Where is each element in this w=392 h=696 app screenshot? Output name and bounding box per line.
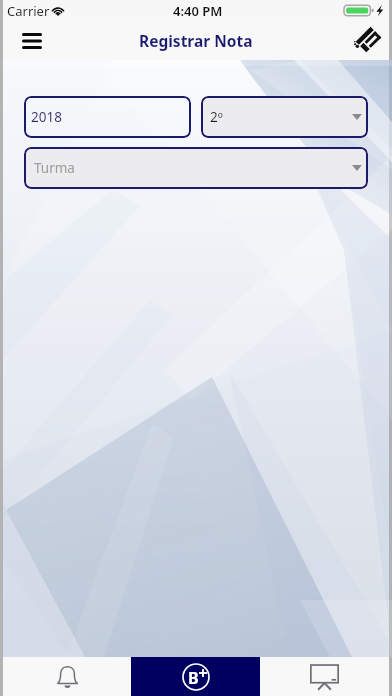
button[interactable]: Menu [3, 21, 51, 60]
staticText: Registrar Nota [139, 30, 253, 51]
button[interactable]: 2º [201, 96, 368, 138]
staticText: 2018 [31, 108, 62, 126]
button[interactable]: Notas [131, 657, 260, 696]
staticText: 2º [210, 108, 223, 126]
staticText: Carrier [7, 2, 50, 20]
button[interactable]: Corrigir [345, 21, 389, 60]
staticText: B [188, 667, 199, 689]
button[interactable]: Notificacoes [3, 657, 131, 696]
button[interactable]: Turma [24, 147, 368, 189]
button[interactable]: Aulas [260, 657, 389, 696]
staticText: Turma [34, 159, 75, 177]
button[interactable]: 2018 [24, 96, 191, 138]
staticText: 4:40 PM [173, 2, 223, 20]
